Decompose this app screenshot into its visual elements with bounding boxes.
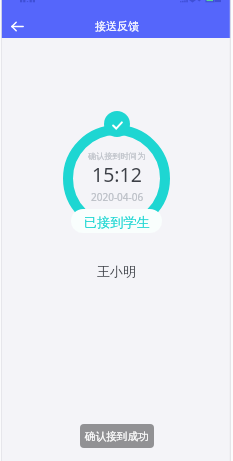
- staticText: 2020-04-06: [91, 190, 144, 204]
- staticText: 王小明: [97, 263, 136, 279]
- staticText: 15:12: [92, 161, 142, 188]
- staticText: 接送反馈: [95, 19, 139, 33]
- staticText: 确认接到成功: [85, 430, 149, 443]
- staticText: 已接到学生: [84, 214, 150, 231]
- staticText: 确认接到时间为: [88, 151, 146, 161]
- button[interactable]: 已接到学生: [71, 209, 162, 233]
- button[interactable]: Back: [5, 14, 29, 38]
